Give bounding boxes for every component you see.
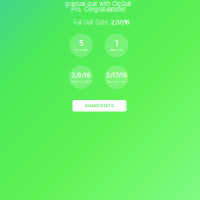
staticText: Pro. Congratulations! xyxy=(71,6,126,13)
staticText: gradual quit with CigQuit xyxy=(65,0,131,7)
staticText: 2/17/16 xyxy=(106,72,127,79)
staticText: 5 xyxy=(79,39,83,48)
staticText: WEEKS LEFT xyxy=(109,49,123,52)
staticText: DAYS LEFT xyxy=(74,49,88,52)
staticText: GRADUAL QUIT xyxy=(70,81,91,83)
button[interactable]: 1 xyxy=(105,34,128,57)
staticText: SHARE STATS xyxy=(85,103,114,108)
button[interactable]: SHARE STATS xyxy=(72,100,126,111)
button[interactable]: 2/17/16 xyxy=(105,65,128,89)
button[interactable]: 5 xyxy=(69,34,93,57)
staticText: FULL QUIT DATE xyxy=(106,81,126,83)
staticText: 1 xyxy=(115,39,118,48)
staticText: 2/17/16 xyxy=(111,19,130,26)
button[interactable]: 2/9/16 xyxy=(69,65,93,89)
staticText: 2/9/16 xyxy=(71,72,90,79)
staticText: Full Quit Date: xyxy=(73,19,109,26)
